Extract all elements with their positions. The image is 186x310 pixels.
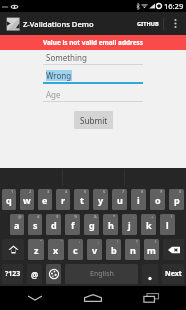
staticText: 8 bbox=[141, 189, 144, 194]
staticText: Wrong bbox=[46, 70, 72, 81]
button[interactable]: % bbox=[65, 214, 80, 235]
staticText: 0 bbox=[179, 189, 182, 194]
staticText: l bbox=[166, 219, 169, 231]
staticText: h bbox=[108, 219, 114, 231]
button[interactable]: 0 bbox=[169, 189, 184, 210]
staticText: q bbox=[6, 194, 12, 206]
staticText: Z-Validations Demo bbox=[23, 19, 94, 29]
staticText: $ bbox=[56, 214, 59, 219]
staticText: GITHUB bbox=[137, 20, 159, 28]
button[interactable]: : bbox=[68, 239, 83, 260]
staticText: Submit bbox=[80, 115, 108, 126]
button[interactable]: Something bbox=[43, 51, 143, 65]
staticText: z bbox=[34, 244, 39, 256]
button[interactable]: Backspace bbox=[163, 239, 184, 260]
button[interactable]: ) bbox=[144, 239, 159, 260]
staticText: : bbox=[79, 239, 81, 244]
staticText: ! bbox=[117, 239, 119, 244]
button[interactable]: " bbox=[28, 239, 44, 260]
staticText: d bbox=[51, 219, 57, 231]
staticText: s bbox=[33, 219, 38, 231]
button[interactable]: Home bbox=[70, 286, 116, 310]
button[interactable]: ( bbox=[160, 214, 175, 235]
staticText: 6 bbox=[103, 189, 106, 194]
button[interactable]: Age bbox=[43, 88, 143, 102]
button[interactable]: 5 bbox=[74, 189, 89, 210]
staticText: @ bbox=[18, 214, 22, 219]
button[interactable]: 6 bbox=[93, 189, 108, 210]
button[interactable]: @ bbox=[10, 214, 24, 235]
button[interactable]: Submit bbox=[74, 111, 113, 129]
button[interactable]: Back bbox=[12, 286, 58, 310]
staticText: 3 bbox=[47, 189, 50, 194]
staticText: x bbox=[53, 244, 59, 256]
button[interactable]: 9 bbox=[150, 189, 165, 210]
staticText: k bbox=[146, 219, 152, 231]
button[interactable]: 8 bbox=[131, 189, 146, 210]
button[interactable]: Next bbox=[162, 264, 184, 284]
button[interactable]: Shift bbox=[2, 239, 24, 260]
button[interactable]: # bbox=[28, 214, 42, 235]
staticText: t bbox=[80, 194, 84, 206]
staticText: - bbox=[133, 214, 135, 219]
staticText: ( bbox=[171, 214, 173, 219]
button[interactable]: ?123 bbox=[2, 264, 23, 284]
staticText: 1 bbox=[11, 189, 14, 194]
button[interactable]: & bbox=[84, 214, 99, 235]
button[interactable]: ? bbox=[125, 239, 140, 260]
button[interactable]: Recent apps bbox=[128, 286, 174, 310]
staticText: a bbox=[14, 219, 20, 231]
button[interactable]: English bbox=[65, 264, 138, 284]
staticText: @ bbox=[31, 269, 39, 280]
button[interactable]: @ bbox=[27, 264, 42, 284]
staticText: English bbox=[90, 269, 114, 279]
button[interactable]: GITHUB bbox=[133, 12, 163, 35]
button[interactable]: Period bbox=[142, 264, 158, 284]
button[interactable]: 2 bbox=[20, 189, 34, 210]
button[interactable]: ; bbox=[87, 239, 102, 260]
staticText: ' bbox=[61, 239, 62, 244]
staticText: + bbox=[151, 214, 154, 219]
staticText: y bbox=[98, 194, 104, 206]
staticText: r bbox=[61, 194, 66, 206]
button[interactable]: ' bbox=[48, 239, 64, 260]
staticText: Value is not valid email address bbox=[43, 38, 143, 47]
staticText: w bbox=[23, 194, 31, 206]
button[interactable]: 3 bbox=[38, 189, 52, 210]
staticText: 9 bbox=[160, 189, 163, 194]
staticText: 5 bbox=[84, 189, 87, 194]
staticText: g bbox=[89, 219, 95, 231]
staticText: u bbox=[117, 194, 123, 206]
staticText: p bbox=[174, 194, 180, 206]
staticText: f bbox=[71, 219, 75, 231]
staticText: v bbox=[92, 244, 98, 256]
staticText: m bbox=[147, 244, 156, 256]
staticText: ; bbox=[98, 239, 100, 244]
button[interactable]: More options bbox=[164, 12, 186, 35]
staticText: Something bbox=[46, 52, 87, 63]
staticText: c bbox=[73, 244, 78, 256]
button[interactable]: 4 bbox=[56, 189, 70, 210]
staticText: ) bbox=[155, 239, 157, 244]
staticText: 4 bbox=[65, 189, 68, 194]
button[interactable]: * bbox=[103, 214, 118, 235]
button[interactable]: 7 bbox=[112, 189, 127, 210]
button[interactable]: Wrong bbox=[43, 69, 143, 84]
button[interactable]: $ bbox=[46, 214, 61, 235]
button[interactable]: ! bbox=[106, 239, 121, 260]
button[interactable]: - bbox=[122, 214, 137, 235]
staticText: e bbox=[42, 194, 48, 206]
staticText: b bbox=[111, 244, 117, 256]
button[interactable]: Change language bbox=[46, 264, 61, 284]
staticText: j bbox=[128, 219, 131, 231]
staticText: ? bbox=[136, 239, 138, 244]
staticText: ?123 bbox=[5, 269, 21, 279]
button[interactable]: 1 bbox=[2, 189, 16, 210]
button[interactable]: + bbox=[141, 214, 156, 235]
staticText: Age bbox=[46, 89, 61, 100]
staticText: o bbox=[155, 194, 161, 206]
staticText: # bbox=[37, 214, 40, 219]
